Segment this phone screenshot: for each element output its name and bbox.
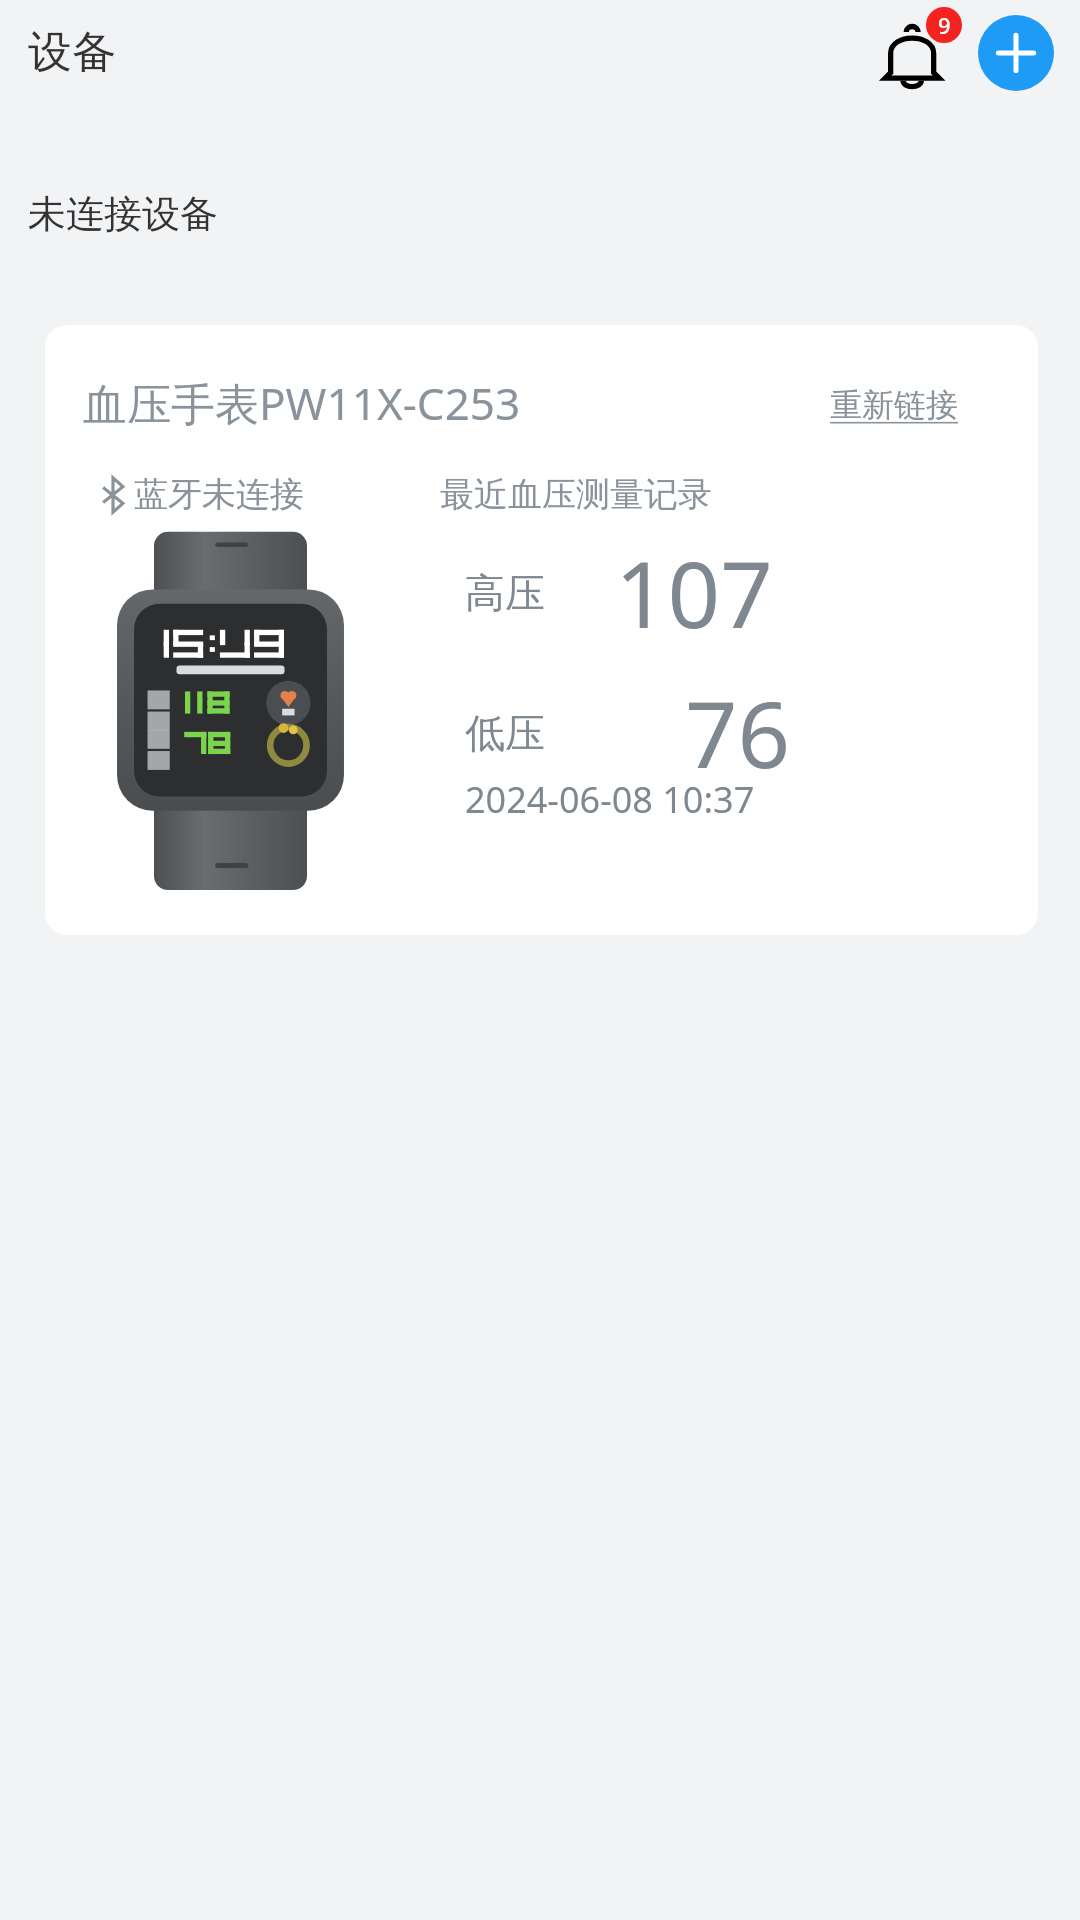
staticText: 血压手表PW11X-C253 bbox=[83, 373, 521, 433]
staticText: 9 bbox=[938, 10, 951, 40]
staticText: 76 bbox=[685, 670, 791, 795]
button[interactable]: 重新链接 bbox=[830, 385, 958, 425]
staticText: 设备 bbox=[28, 25, 116, 80]
staticText: 低压 bbox=[465, 708, 545, 758]
staticText: 未连接设备 bbox=[28, 190, 218, 238]
staticText: 重新链接 bbox=[830, 385, 958, 425]
staticText: 107 bbox=[615, 530, 773, 655]
button[interactable]: 血压手表PW11X-C253 bbox=[45, 325, 1038, 935]
staticText: 2024-06-08 10:37 bbox=[465, 775, 755, 824]
button[interactable]: Add device bbox=[978, 15, 1054, 91]
button[interactable]: Notifications bbox=[868, 5, 964, 101]
staticText: 高压 bbox=[465, 568, 545, 618]
staticText: 最近血压测量记录 bbox=[440, 473, 712, 516]
staticText: 蓝牙未连接 bbox=[134, 473, 304, 516]
